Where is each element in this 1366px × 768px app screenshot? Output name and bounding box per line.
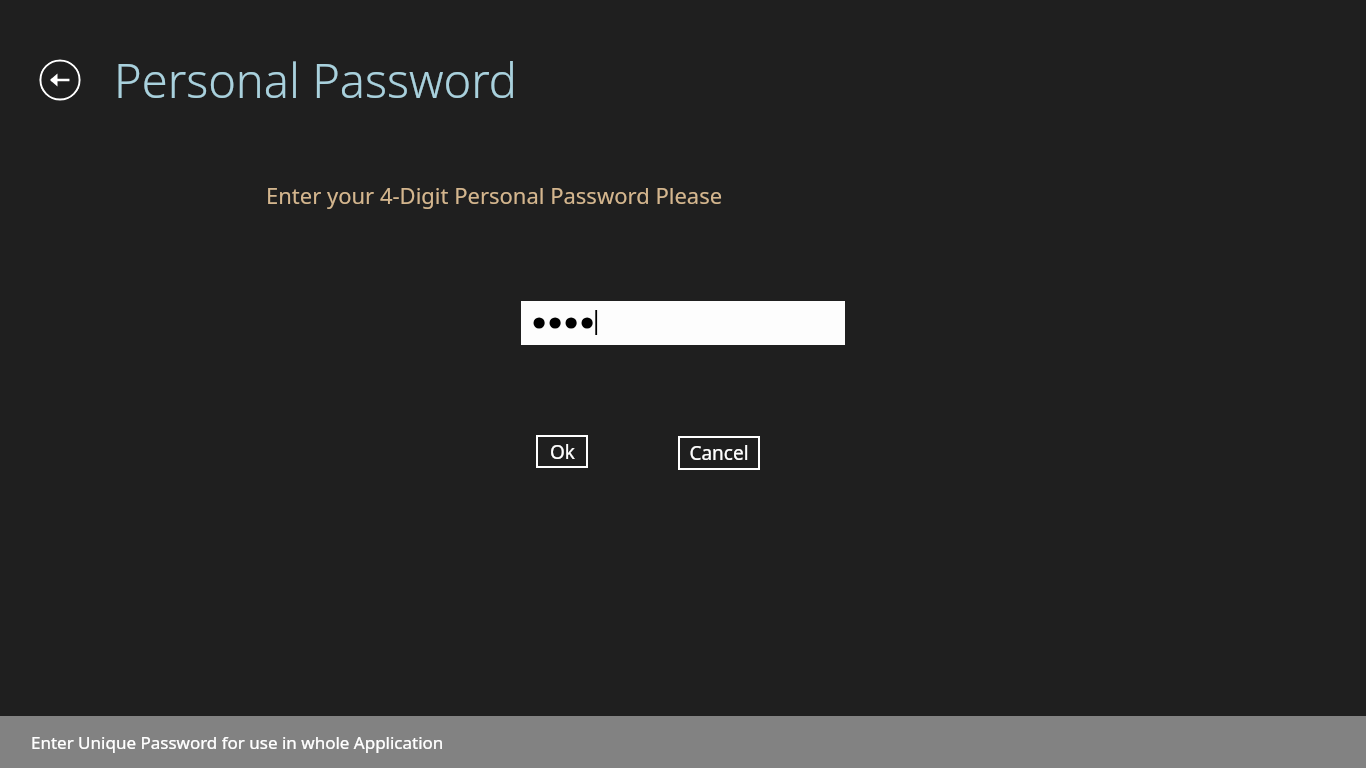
staticText: Enter Unique Password for use in whole A… [31, 731, 444, 754]
staticText: Ok [550, 439, 575, 465]
staticText: Cancel [689, 440, 749, 466]
staticText: Personal Password [114, 48, 518, 112]
button[interactable]: Password entry field [521, 301, 845, 345]
button[interactable]: Ok [536, 435, 588, 468]
button[interactable]: Back [39, 59, 81, 101]
staticText: Enter your 4-Digit Personal Password Ple… [266, 180, 723, 210]
button[interactable]: Cancel [678, 436, 760, 470]
